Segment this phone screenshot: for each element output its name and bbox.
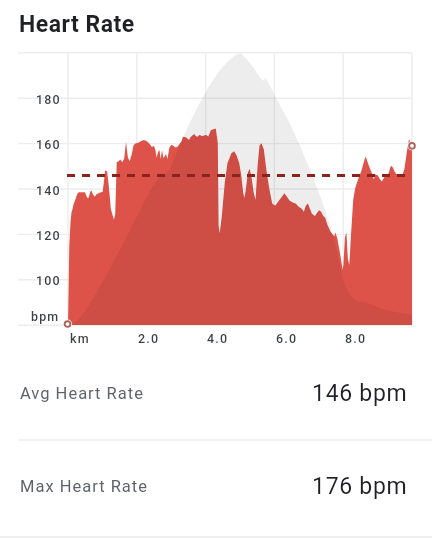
staticText: 4.0 <box>207 331 229 346</box>
button[interactable]: Avg Heart Rate <box>0 0 432 538</box>
staticText: 6.0 <box>276 331 298 346</box>
staticText: 8.0 <box>345 331 367 346</box>
staticText: 140 <box>36 183 61 198</box>
staticText: Max Heart Rate <box>20 477 148 496</box>
staticText: 180 <box>36 92 61 107</box>
staticText: 176 bpm <box>312 473 408 500</box>
button[interactable]: Max Heart Rate <box>0 0 432 538</box>
staticText: bpm <box>31 309 60 324</box>
staticText: km <box>70 331 90 346</box>
staticText: 100 <box>36 273 61 288</box>
staticText: 160 <box>36 137 61 152</box>
staticText: 2.0 <box>138 331 160 346</box>
staticText: 146 bpm <box>312 380 408 407</box>
staticText: Avg Heart Rate <box>20 384 144 403</box>
staticText: 120 <box>36 228 61 243</box>
staticText: Heart Rate <box>19 11 135 38</box>
